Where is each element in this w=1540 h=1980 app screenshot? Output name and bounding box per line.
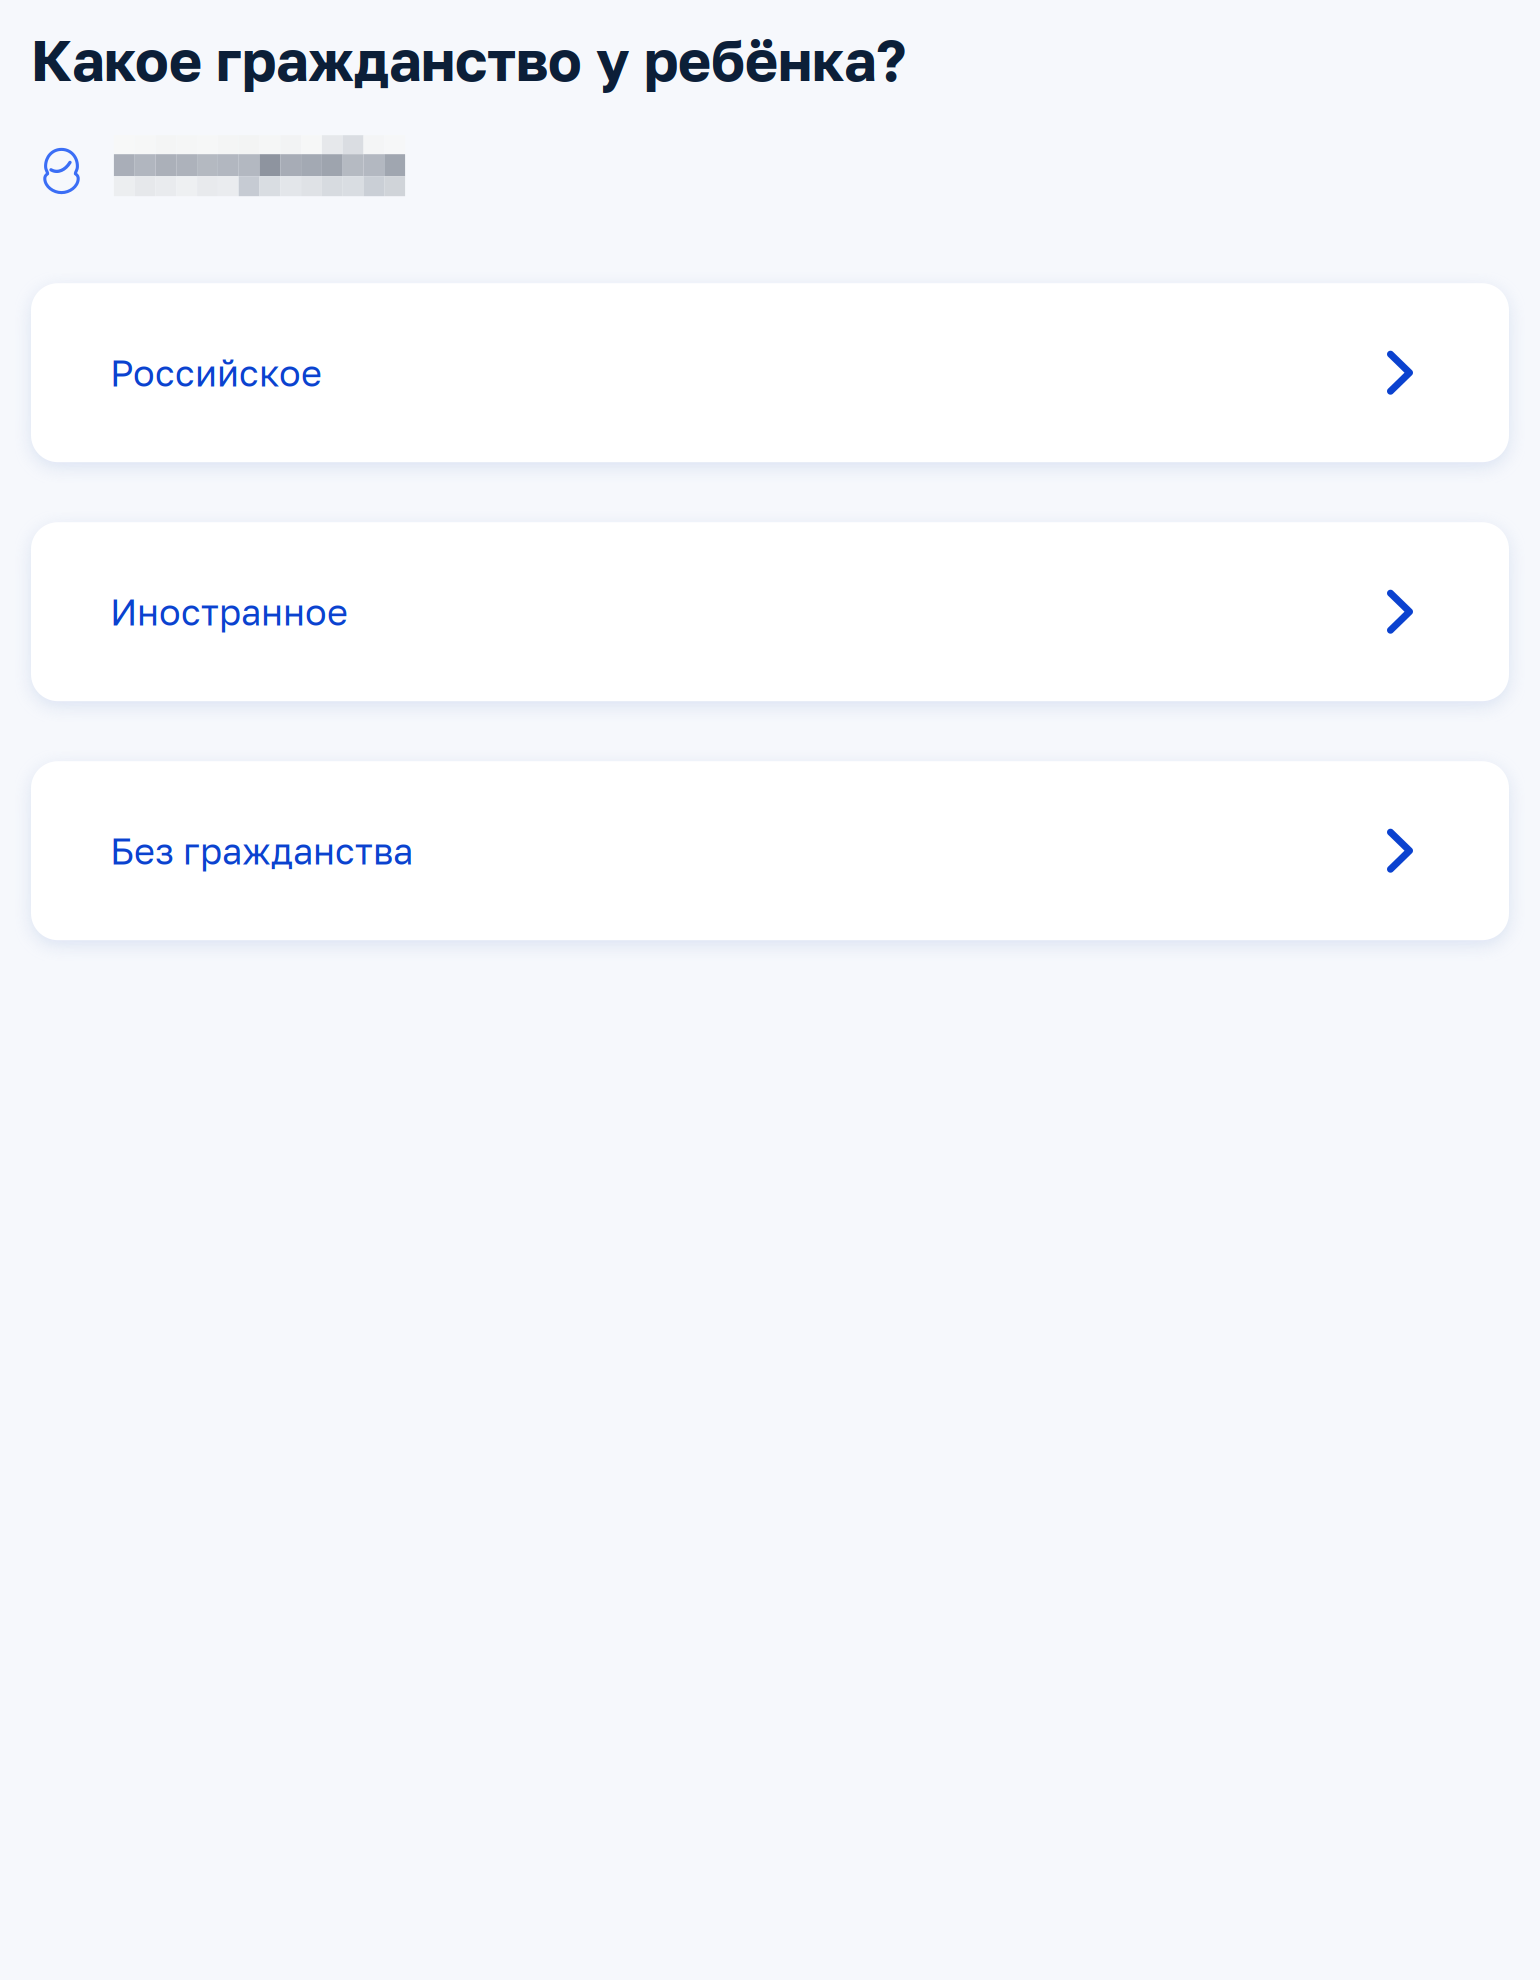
staticText: Иностранное (110, 590, 348, 633)
button[interactable]: Без гражданства (31, 761, 1509, 940)
button[interactable]: Иностранное (31, 522, 1509, 701)
button[interactable]: Российское (31, 283, 1509, 462)
staticText: Без гражданства (110, 829, 413, 872)
staticText: Российское (110, 351, 322, 394)
staticText: Какое гражданство у ребёнка? (31, 26, 906, 93)
